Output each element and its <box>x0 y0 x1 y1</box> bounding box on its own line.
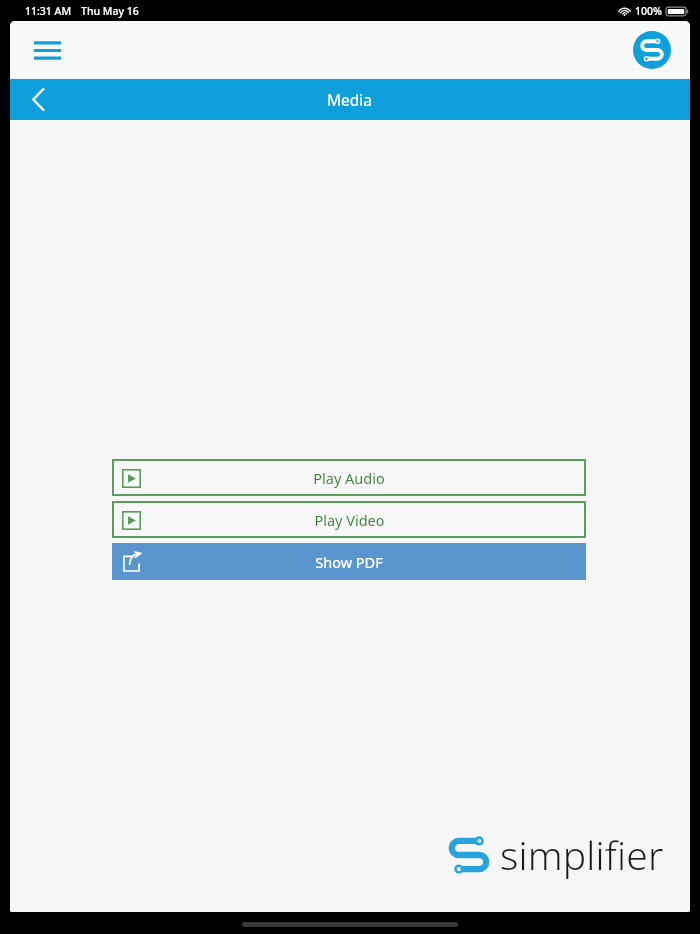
staticText: Thu May 16 <box>81 4 139 18</box>
staticText: simplifier <box>500 828 664 881</box>
staticText: Show PDF <box>315 552 383 572</box>
button[interactable]: Simplifier home <box>632 30 672 70</box>
button[interactable]: Play Video <box>112 501 586 538</box>
staticText: Media <box>327 89 373 110</box>
staticText: 100% <box>635 4 662 18</box>
staticText: Play Video <box>314 510 385 530</box>
staticText: Play Audio <box>313 468 385 488</box>
button[interactable]: Play Audio <box>112 459 586 496</box>
staticText: 11:31 AM <box>25 4 72 18</box>
button[interactable]: Back <box>10 79 66 120</box>
button[interactable]: Menu <box>27 30 67 70</box>
button[interactable]: Show PDF <box>112 543 586 580</box>
